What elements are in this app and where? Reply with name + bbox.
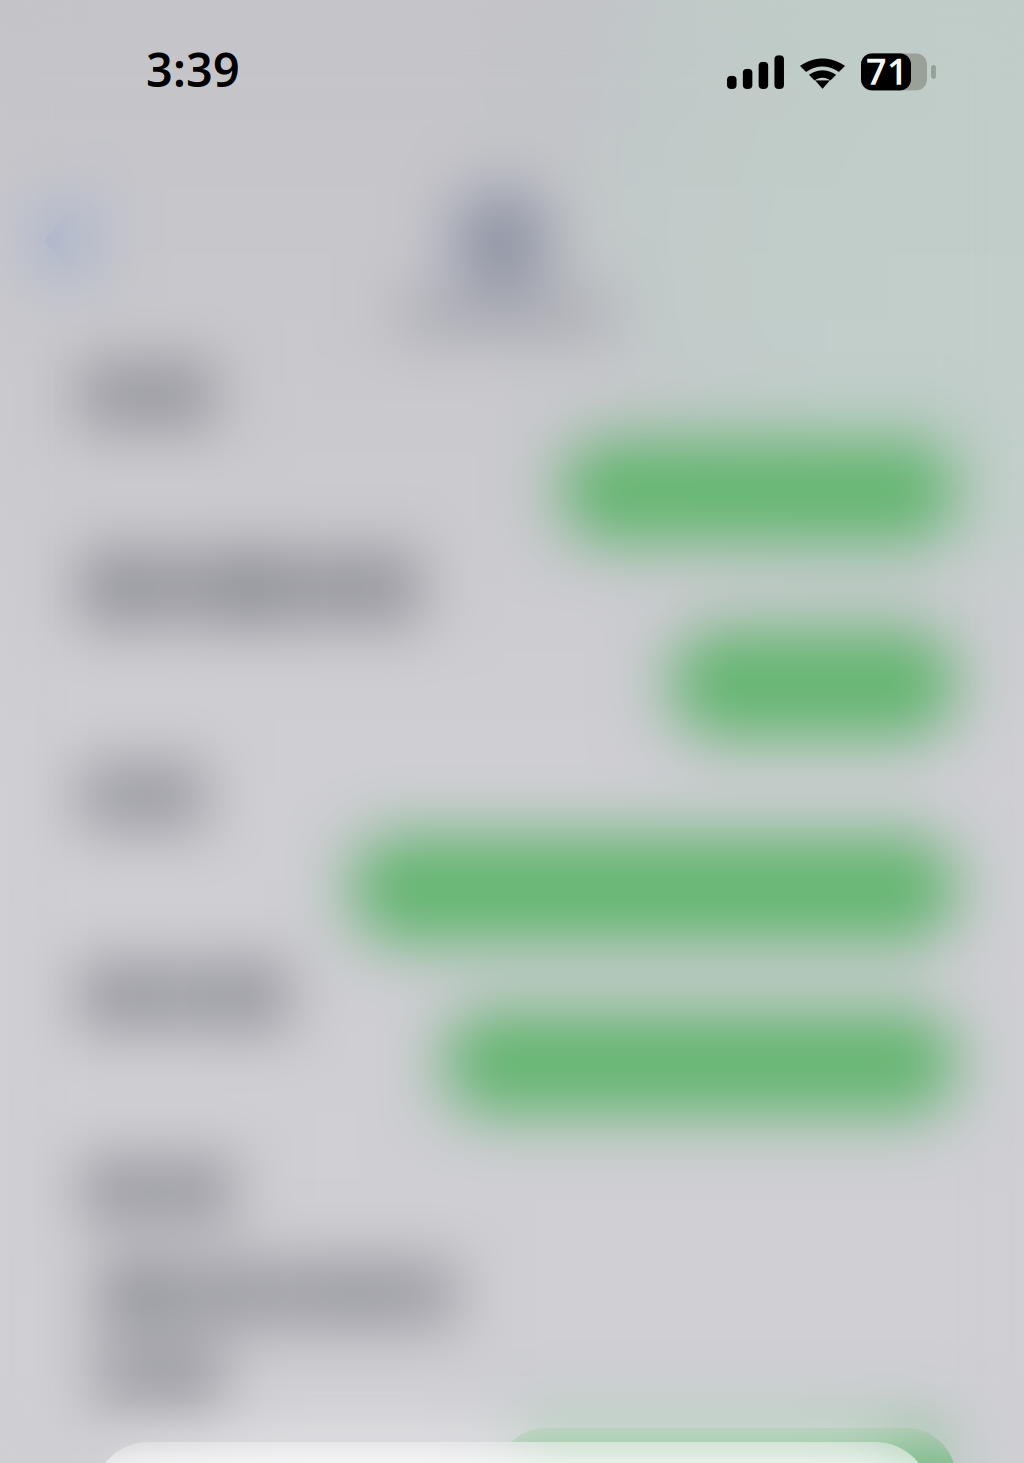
- staticText: 3:39: [146, 38, 240, 100]
- staticText: 71: [866, 47, 908, 95]
